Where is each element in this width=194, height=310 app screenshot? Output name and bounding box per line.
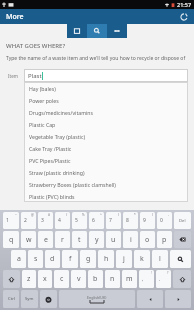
staticText: Plastic (PVC) blinds	[29, 193, 75, 200]
button[interactable]: g	[80, 250, 96, 268]
staticText: ,	[142, 276, 144, 283]
button[interactable]: PVC Pipes/Plastic	[24, 154, 188, 166]
button[interactable]: 2	[21, 212, 36, 229]
staticText: Vegetable Tray (plastic)	[29, 133, 85, 140]
button[interactable]: Sym	[21, 290, 38, 308]
staticText: (	[152, 213, 153, 217]
button[interactable]: d	[45, 250, 60, 268]
button[interactable]: h	[98, 250, 114, 268]
staticText: h	[104, 254, 109, 264]
staticText: English(UK)	[87, 295, 107, 300]
button[interactable]: Cake Tray /Plastic	[24, 142, 188, 154]
staticText: 8	[126, 217, 129, 224]
button[interactable]: 6	[89, 212, 104, 229]
button[interactable]: r	[55, 231, 70, 248]
staticText: PVC Pipes/Plastic	[29, 157, 71, 164]
button[interactable]: Strawberry Boxes (plastic clamshell)	[24, 178, 188, 190]
button[interactable]: f	[62, 250, 78, 268]
button[interactable]: List view	[67, 24, 87, 38]
staticText: c	[60, 274, 64, 284]
button[interactable]: Plastic (PVC) blinds	[24, 190, 188, 202]
button[interactable]: i	[123, 231, 138, 248]
staticText: 2	[24, 217, 27, 224]
button[interactable]: 9	[140, 212, 155, 229]
button[interactable]: More options	[107, 24, 127, 38]
button[interactable]: Straw (plastic drinking)	[24, 166, 188, 178]
button[interactable]: 0	[157, 212, 172, 229]
button[interactable]: Settings	[40, 290, 57, 308]
button[interactable]: v	[71, 270, 86, 288]
button[interactable]: e	[38, 231, 53, 248]
button[interactable]: s	[28, 250, 43, 268]
staticText: f	[69, 254, 72, 264]
button[interactable]: .	[156, 270, 171, 288]
button[interactable]: 7	[106, 212, 121, 229]
staticText: Item	[8, 73, 24, 79]
button[interactable]: t	[72, 231, 87, 248]
staticText: 1	[6, 217, 9, 224]
staticText: .	[159, 276, 161, 283]
staticText: n	[110, 274, 115, 284]
button[interactable]: Refresh	[177, 10, 190, 23]
button[interactable]: m	[122, 270, 137, 288]
button[interactable]: k	[134, 250, 150, 268]
staticText: Hay (bales)	[29, 85, 56, 92]
staticText: 0	[160, 217, 163, 224]
staticText: Plast	[28, 72, 42, 80]
staticText: 3	[41, 217, 44, 224]
button[interactable]: x	[38, 270, 52, 288]
button[interactable]: Power poles	[24, 94, 188, 106]
button[interactable]: l	[152, 250, 168, 268]
button[interactable]: Cursor left	[137, 290, 163, 308]
button[interactable]: Plastic Cap	[24, 118, 188, 130]
button[interactable]: Search	[87, 24, 107, 38]
staticText: e	[44, 235, 48, 245]
button[interactable]: w	[21, 231, 36, 248]
staticText: a	[17, 254, 21, 264]
staticText: m	[126, 274, 133, 284]
staticText: Cake Tray /Plastic	[29, 145, 72, 152]
button[interactable]: Ctrl	[3, 290, 19, 308]
button[interactable]: z	[22, 270, 36, 288]
button[interactable]: Vegetable Tray (plastic)	[24, 130, 188, 142]
staticText: WHAT GOES WHERE?	[6, 42, 66, 50]
button[interactable]: 1	[3, 212, 19, 229]
staticText: 5	[75, 217, 78, 224]
button[interactable]: 4	[55, 212, 70, 229]
button[interactable]: 3	[38, 212, 53, 229]
staticText: r	[61, 235, 64, 245]
button[interactable]: Backspace	[174, 231, 191, 248]
button[interactable]: Search	[170, 250, 191, 268]
staticText: Sym	[25, 296, 34, 302]
staticText: Strawberry Boxes (plastic clamshell)	[29, 181, 116, 188]
button[interactable]: Del	[174, 212, 191, 229]
button[interactable]: 8	[123, 212, 138, 229]
staticText: Straw (plastic drinking)	[29, 169, 85, 176]
button[interactable]: p	[157, 231, 172, 248]
staticText: 9	[143, 217, 146, 224]
button[interactable]: n	[105, 270, 120, 288]
staticText: Plastic Cap	[29, 121, 56, 128]
button[interactable]: o	[140, 231, 155, 248]
button[interactable]: Shift	[3, 270, 20, 288]
button[interactable]: y	[89, 231, 104, 248]
button[interactable]: English(UK)	[59, 290, 135, 308]
button[interactable]: Shift	[173, 270, 191, 288]
button[interactable]: a	[11, 250, 26, 268]
button[interactable]: Hay (bales)	[24, 82, 188, 94]
button[interactable]: j	[116, 250, 132, 268]
button[interactable]: Plast	[24, 69, 188, 82]
button[interactable]: Cursor right	[165, 290, 191, 308]
staticText: %	[82, 213, 85, 217]
button[interactable]: ,	[139, 270, 154, 288]
staticText: y	[95, 235, 99, 245]
button[interactable]: 5	[72, 212, 87, 229]
button[interactable]: Drugs/medicines/vitamins	[24, 106, 188, 118]
staticText: j	[123, 254, 125, 264]
button[interactable]: q	[3, 231, 19, 248]
staticText: #	[48, 213, 51, 217]
button[interactable]: u	[106, 231, 121, 248]
button[interactable]: c	[54, 270, 69, 288]
button[interactable]: b	[88, 270, 103, 288]
staticText: 7	[109, 217, 112, 224]
